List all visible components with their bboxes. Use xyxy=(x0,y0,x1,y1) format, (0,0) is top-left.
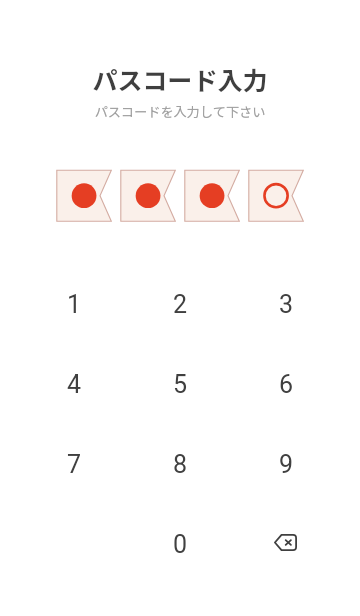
button[interactable]: 0 xyxy=(127,504,233,584)
staticText: 0 xyxy=(173,530,188,559)
button[interactable]: 7 xyxy=(21,424,127,504)
button[interactable]: 6 xyxy=(233,344,339,424)
other: Backspace xyxy=(274,534,297,551)
staticText: パスコードを入力して下さい xyxy=(0,102,360,121)
staticText: 3 xyxy=(279,290,294,319)
button[interactable]: 2 xyxy=(127,264,233,344)
staticText: 6 xyxy=(279,370,294,399)
staticText: パスコード入力 xyxy=(0,61,360,97)
staticText: 4 xyxy=(67,370,82,399)
staticText: 1 xyxy=(67,290,82,319)
button[interactable]: 4 xyxy=(21,344,127,424)
staticText: 7 xyxy=(67,450,82,479)
button[interactable]: 5 xyxy=(127,344,233,424)
staticText: 5 xyxy=(173,370,188,399)
button[interactable]: Backspace xyxy=(233,504,339,584)
staticText: 2 xyxy=(173,290,188,319)
button[interactable]: 9 xyxy=(233,424,339,504)
button[interactable]: 1 xyxy=(21,264,127,344)
staticText: 8 xyxy=(173,450,188,479)
button[interactable]: 8 xyxy=(127,424,233,504)
button[interactable]: 3 xyxy=(233,264,339,344)
staticText: 9 xyxy=(279,450,294,479)
